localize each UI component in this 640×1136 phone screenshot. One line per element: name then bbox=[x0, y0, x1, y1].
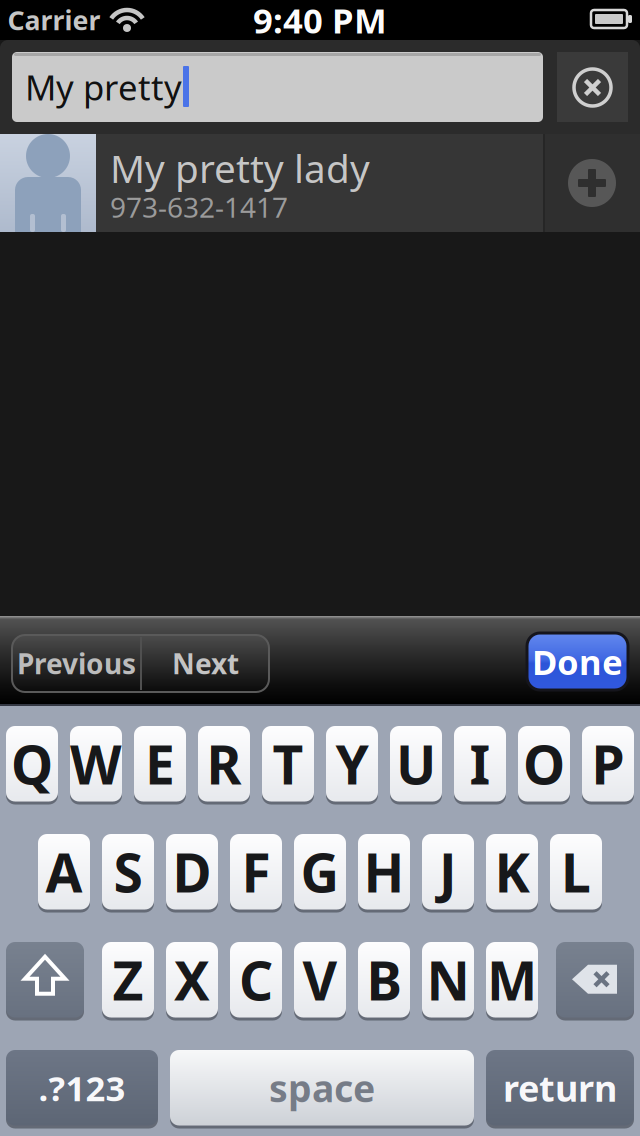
staticText: Previous bbox=[17, 645, 136, 682]
button[interactable]: X bbox=[166, 942, 218, 1020]
staticText: return bbox=[503, 1064, 617, 1112]
button[interactable]: J bbox=[422, 834, 474, 912]
staticText: K bbox=[494, 836, 529, 907]
staticText: P bbox=[591, 728, 624, 799]
button[interactable]: Delete bbox=[556, 942, 634, 1020]
button[interactable]: Q bbox=[6, 726, 58, 804]
staticText: S bbox=[113, 836, 142, 907]
staticText: 973-632-1417 bbox=[110, 188, 288, 226]
button[interactable]: Clear text bbox=[557, 52, 628, 122]
staticText: X bbox=[174, 944, 210, 1015]
button[interactable]: G bbox=[294, 834, 346, 912]
button[interactable]: Previous bbox=[12, 635, 141, 692]
staticText: C bbox=[239, 944, 273, 1015]
button[interactable]: return bbox=[486, 1050, 634, 1128]
button[interactable]: H bbox=[358, 834, 410, 912]
button[interactable]: My pretty lady bbox=[0, 134, 543, 232]
staticText: Z bbox=[112, 944, 143, 1015]
staticText: G bbox=[300, 836, 339, 907]
staticText: J bbox=[439, 836, 457, 907]
button[interactable]: Shift bbox=[6, 942, 84, 1020]
staticText: H bbox=[363, 836, 404, 907]
staticText: E bbox=[145, 728, 175, 799]
staticText: Q bbox=[11, 728, 53, 799]
button[interactable]: T bbox=[262, 726, 314, 804]
staticText: D bbox=[172, 836, 211, 907]
staticText: Y bbox=[335, 728, 368, 799]
button[interactable]: .?123 bbox=[6, 1050, 158, 1128]
button[interactable]: E bbox=[134, 726, 186, 804]
button[interactable]: K bbox=[486, 834, 538, 912]
staticText: W bbox=[70, 728, 122, 799]
button[interactable]: space bbox=[170, 1050, 474, 1128]
button[interactable]: I bbox=[454, 726, 506, 804]
button[interactable]: F bbox=[230, 834, 282, 912]
staticText: My pretty lady bbox=[110, 142, 370, 194]
button[interactable]: O bbox=[518, 726, 570, 804]
staticText: V bbox=[302, 944, 337, 1015]
staticText: L bbox=[561, 836, 591, 907]
button[interactable]: C bbox=[230, 942, 282, 1020]
staticText: O bbox=[523, 728, 565, 799]
button[interactable]: Z bbox=[102, 942, 154, 1020]
button[interactable]: N bbox=[422, 942, 474, 1020]
button[interactable]: V bbox=[294, 942, 346, 1020]
button[interactable]: B bbox=[358, 942, 410, 1020]
staticText: Done bbox=[532, 638, 623, 684]
button[interactable]: R bbox=[198, 726, 250, 804]
staticText: 9:40 PM bbox=[253, 0, 387, 43]
staticText: .?123 bbox=[38, 1065, 125, 1111]
button[interactable]: Done bbox=[527, 633, 628, 690]
staticText: T bbox=[272, 728, 303, 799]
button[interactable]: M bbox=[486, 942, 538, 1020]
staticText: I bbox=[469, 728, 490, 799]
button[interactable]: S bbox=[102, 834, 154, 912]
button[interactable]: Add contact bbox=[545, 134, 640, 232]
staticText: B bbox=[366, 944, 401, 1015]
staticText: N bbox=[426, 944, 469, 1015]
button[interactable]: Next bbox=[142, 635, 269, 692]
button[interactable]: D bbox=[166, 834, 218, 912]
button[interactable]: L bbox=[550, 834, 602, 912]
staticText: U bbox=[396, 728, 436, 799]
staticText: space bbox=[269, 1063, 375, 1113]
staticText: Carrier bbox=[7, 2, 100, 38]
button[interactable]: P bbox=[582, 726, 634, 804]
button[interactable]: A bbox=[38, 834, 90, 912]
button[interactable]: U bbox=[390, 726, 442, 804]
staticText: F bbox=[241, 836, 270, 907]
staticText: My pretty bbox=[25, 64, 182, 110]
button[interactable]: W bbox=[70, 726, 122, 804]
staticText: A bbox=[45, 836, 82, 907]
staticText: M bbox=[487, 944, 537, 1015]
staticText: R bbox=[206, 728, 241, 799]
staticText: Next bbox=[172, 645, 239, 682]
button[interactable]: Y bbox=[326, 726, 378, 804]
